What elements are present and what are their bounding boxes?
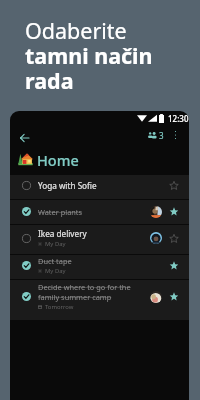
button[interactable]: 3	[145, 127, 167, 144]
button[interactable]: Mark incomplete	[20, 290, 33, 303]
staticText: My Day	[45, 267, 66, 275]
button[interactable]: Mark complete	[20, 232, 33, 245]
button[interactable]: Back	[15, 128, 34, 147]
staticText: Decide where to go for the family summer…	[38, 282, 131, 302]
button[interactable]: Mark complete	[10, 225, 189, 255]
staticText: Home	[37, 150, 79, 169]
button[interactable]: Mark incomplete	[10, 200, 189, 225]
staticText: 3	[159, 130, 164, 141]
staticText: Water plants	[38, 207, 83, 217]
button[interactable]: Mark incomplete	[10, 255, 189, 280]
button[interactable]: Mark as important	[167, 232, 180, 245]
button[interactable]: Remove from important	[167, 290, 180, 303]
button[interactable]: Mark incomplete	[20, 259, 33, 272]
staticText: 12:30	[168, 113, 189, 124]
button[interactable]: Mark incomplete	[20, 205, 33, 218]
staticText: Duct tape	[38, 256, 72, 266]
button[interactable]: Remove from important	[167, 259, 180, 272]
button[interactable]: More options	[167, 127, 183, 143]
staticText: Odaberite tamni način rada	[25, 16, 153, 95]
button[interactable]: Mark complete	[20, 179, 33, 192]
button[interactable]: Remove from important	[167, 205, 180, 218]
staticText: Ikea delivery	[38, 228, 87, 239]
staticText: Yoga with Sofie	[38, 180, 97, 191]
staticText: Tomorrow	[45, 303, 74, 311]
staticText: My Day	[45, 240, 66, 248]
button[interactable]: Mark as important	[167, 179, 180, 192]
button[interactable]: Mark complete	[10, 175, 189, 200]
button[interactable]: Mark incomplete	[10, 280, 189, 321]
